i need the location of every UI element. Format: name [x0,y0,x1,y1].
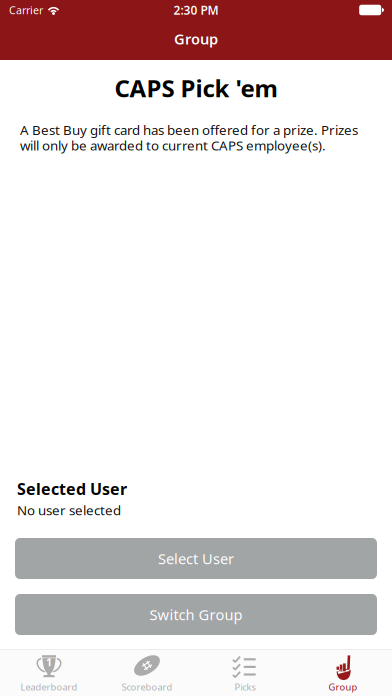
button[interactable]: Picks [196,649,294,696]
staticText: Carrier [9,3,43,17]
staticText: Picks [234,681,255,693]
staticText: 1 [46,655,52,669]
staticText: A Best Buy gift card has been offered fo… [20,121,358,154]
button[interactable]: Scoreboard [98,649,196,696]
button[interactable]: 1 [0,649,98,696]
button[interactable]: Select User [15,538,377,579]
staticText: Group [328,681,357,693]
staticText: 2:30 PM [173,2,218,18]
staticText: No user selected [17,501,121,519]
button[interactable]: Group [294,649,392,696]
staticText: CAPS Pick 'em [114,72,277,104]
staticText: Selected User [17,478,127,499]
staticText: Switch Group [149,605,242,624]
button[interactable]: Switch Group [15,594,377,635]
staticText: Select User [158,549,234,568]
staticText: Group [174,29,218,48]
staticText: Scoreboard [121,681,172,693]
staticText: Leaderboard [20,681,77,693]
